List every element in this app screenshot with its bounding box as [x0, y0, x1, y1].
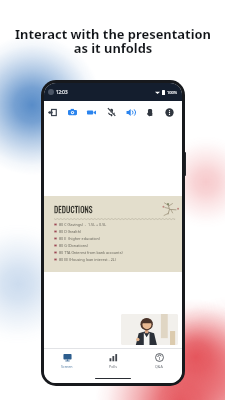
button[interactable]: Q&A — [136, 353, 182, 369]
staticText: Polls — [109, 364, 117, 369]
staticText: 80 EE (Housing loan interest - 2L) — [59, 257, 116, 262]
button[interactable]: Screen — [44, 353, 90, 369]
button[interactable]: Raise hand — [142, 104, 159, 121]
staticText: 80 G (Donations) — [59, 243, 88, 248]
staticText: Interact with the presentation as it unf… — [15, 25, 211, 57]
button[interactable]: Leave — [44, 104, 61, 121]
button[interactable]: Polls — [90, 353, 136, 369]
staticText: 100% — [167, 90, 178, 95]
staticText: 80 E (higher education) — [59, 236, 100, 241]
staticText: DEDUCTIONS — [54, 204, 93, 216]
staticText: Q&A — [155, 364, 163, 369]
staticText: Screen — [61, 364, 73, 369]
button[interactable]: Video — [83, 104, 100, 121]
staticText: 12:03 — [56, 89, 68, 95]
button[interactable]: More — [161, 104, 178, 121]
button[interactable]: Mute microphone — [103, 104, 120, 121]
staticText: 80 C (Savings) - 1.5L + 0.5L — [59, 222, 107, 227]
button[interactable]: Presenter video — [121, 314, 178, 345]
button[interactable]: Camera — [64, 104, 81, 121]
staticText: 80 D (health) — [59, 229, 82, 234]
button[interactable]: Volume — [122, 104, 139, 121]
staticText: 80 TTA (Interest from bank accounts) — [59, 250, 123, 255]
